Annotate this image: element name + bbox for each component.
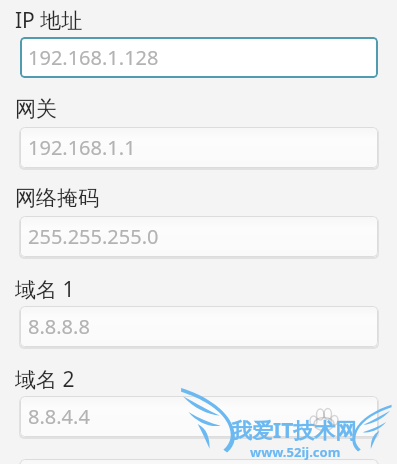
staticText: 网关: [15, 96, 57, 122]
button[interactable]: 255.255.255.0: [20, 216, 378, 257]
staticText: 我爱IT技术网: [231, 416, 357, 445]
button[interactable]: 8.8.8.8: [20, 306, 378, 347]
staticText: 域名 2: [15, 365, 75, 394]
staticText: 网络掩码: [15, 185, 99, 211]
staticText: 192.168.1.1: [28, 134, 136, 161]
staticText: www.52ij.com: [250, 443, 341, 461]
button[interactable]: 192.168.1.1: [20, 127, 378, 168]
staticText: 8.8.8.8: [28, 313, 90, 340]
staticText: 域名 1: [15, 275, 75, 304]
button[interactable]: 8.8.4.4: [20, 396, 378, 437]
staticText: 255.255.255.0: [28, 223, 159, 250]
staticText: 192.168.1.128: [28, 44, 159, 71]
button[interactable]: [20, 459, 378, 464]
staticText: 8.8.4.4: [28, 403, 90, 430]
staticText: IP 地址: [15, 6, 83, 35]
button[interactable]: 192.168.1.128: [20, 37, 378, 78]
